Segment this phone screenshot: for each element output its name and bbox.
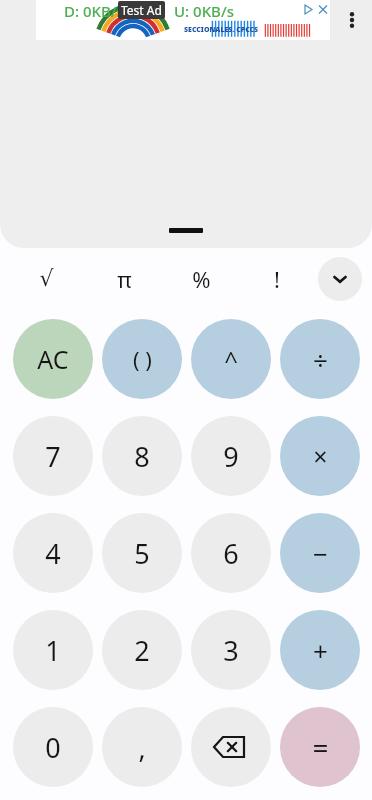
button[interactable]: AC — [13, 319, 93, 399]
staticText: √ — [39, 266, 54, 292]
staticText: × — [313, 439, 328, 473]
button[interactable]: 9 — [191, 416, 271, 496]
button[interactable]: ( ) — [102, 319, 182, 399]
staticText: 2 — [134, 632, 150, 669]
button[interactable]: Backspace — [191, 707, 271, 787]
button[interactable]: More options — [340, 8, 364, 32]
button[interactable]: √ — [22, 255, 70, 303]
staticText: ^ — [224, 343, 238, 376]
button[interactable]: ! — [253, 255, 301, 303]
button[interactable]: 3 — [191, 610, 271, 690]
staticText: + — [313, 633, 328, 668]
button[interactable] — [0, 40, 372, 248]
button[interactable]: Collapse — [318, 257, 362, 301]
staticText: Test Ad — [121, 2, 162, 18]
staticText: 1 — [45, 632, 61, 669]
staticText: 5 — [134, 535, 150, 572]
button[interactable]: = — [280, 707, 360, 787]
staticText: π — [117, 264, 132, 294]
staticText: D: 0KB/s — [64, 1, 124, 21]
staticText: 0 — [45, 729, 61, 766]
button[interactable]: 0 — [13, 707, 93, 787]
staticText: = — [312, 728, 329, 766]
staticText: U: 0KB/s — [174, 1, 234, 21]
staticText: ( ) — [133, 344, 152, 374]
button[interactable]: ÷ — [280, 319, 360, 399]
staticText: AC — [37, 342, 69, 376]
button[interactable]: 5 — [102, 513, 182, 593]
button[interactable]: % — [177, 255, 225, 303]
button[interactable]: 6 — [191, 513, 271, 593]
button[interactable]: , — [102, 707, 182, 787]
staticText: 9 — [223, 438, 239, 475]
staticText: ÷ — [313, 342, 328, 377]
button[interactable]: ^ — [191, 319, 271, 399]
staticText: 7 — [45, 438, 61, 475]
staticText: 4 — [45, 535, 61, 572]
staticText: ! — [274, 264, 280, 294]
staticText: 8 — [134, 438, 150, 475]
staticText: SECCIONALES. CPCCS — [184, 25, 259, 35]
button[interactable]: 1 — [13, 610, 93, 690]
button[interactable]: 4 — [13, 513, 93, 593]
staticText: − — [313, 536, 328, 571]
button[interactable]: × — [280, 416, 360, 496]
staticText: 6 — [223, 535, 239, 572]
button[interactable]: π — [100, 255, 148, 303]
button[interactable]: 2 — [102, 610, 182, 690]
button[interactable]: − — [280, 513, 360, 593]
staticText: 3 — [223, 632, 239, 669]
staticText: , — [138, 729, 146, 766]
button[interactable]: Advertisement — [36, 0, 330, 40]
button[interactable]: + — [280, 610, 360, 690]
staticText: % — [192, 264, 211, 294]
button[interactable]: 8 — [102, 416, 182, 496]
button[interactable]: 7 — [13, 416, 93, 496]
